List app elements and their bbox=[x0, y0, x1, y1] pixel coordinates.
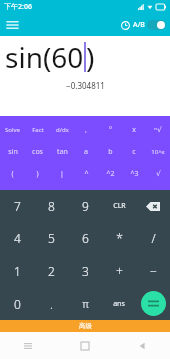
staticText: Solve bbox=[5, 126, 20, 134]
staticText: / bbox=[151, 230, 156, 246]
button[interactable]: / bbox=[136, 222, 170, 254]
button[interactable]: ) bbox=[25, 163, 50, 185]
staticText: 3 bbox=[82, 263, 89, 279]
button[interactable]: Recents bbox=[0, 332, 56, 359]
button[interactable]: 7 bbox=[0, 190, 34, 222]
staticText: − bbox=[150, 263, 157, 279]
staticText: π bbox=[82, 297, 89, 311]
button[interactable]: c bbox=[122, 141, 146, 163]
staticText: 10^x bbox=[151, 148, 165, 156]
staticText: ^3 bbox=[130, 169, 139, 179]
button[interactable]: 1 bbox=[0, 254, 34, 287]
button[interactable]: Menu bbox=[3, 16, 21, 34]
button[interactable]: + bbox=[102, 254, 136, 287]
button[interactable]: 3 bbox=[68, 254, 102, 287]
staticText: 高级 bbox=[79, 322, 92, 330]
button[interactable]: 高级 bbox=[0, 320, 170, 332]
staticText: ( bbox=[11, 169, 14, 179]
button[interactable]: 10^x bbox=[146, 141, 170, 163]
button[interactable]: ( bbox=[0, 163, 25, 185]
staticText: ) bbox=[36, 169, 39, 179]
button[interactable]: . bbox=[34, 287, 68, 320]
button[interactable]: Solve bbox=[0, 119, 25, 141]
staticText: , bbox=[85, 125, 87, 135]
staticText: ) bbox=[86, 38, 95, 76]
staticText: 6 bbox=[82, 230, 89, 246]
button[interactable]: Equals bbox=[141, 291, 166, 316]
staticText: sin bbox=[8, 147, 18, 157]
staticText: ^ bbox=[84, 169, 89, 179]
button[interactable]: History bbox=[118, 18, 132, 32]
staticText: a bbox=[84, 147, 88, 157]
button[interactable]: Toggle A or B bbox=[147, 20, 166, 30]
button[interactable]: √ bbox=[146, 163, 170, 185]
button[interactable]: b bbox=[98, 141, 122, 163]
staticText: 2 bbox=[48, 263, 55, 279]
button[interactable]: ° bbox=[98, 119, 122, 141]
staticText: ^2 bbox=[106, 169, 115, 179]
button[interactable]: 6 bbox=[68, 222, 102, 254]
button[interactable]: cos bbox=[25, 141, 50, 163]
staticText: . bbox=[50, 296, 53, 312]
staticText: 5 bbox=[48, 230, 55, 246]
staticText: c bbox=[132, 147, 136, 157]
button[interactable]: CLR bbox=[102, 190, 136, 222]
staticText: 9 bbox=[82, 198, 89, 214]
button[interactable]: | bbox=[50, 163, 74, 185]
staticText: | bbox=[60, 169, 64, 179]
button[interactable]: ^3 bbox=[122, 163, 146, 185]
staticText: cos bbox=[32, 147, 43, 157]
button[interactable]: 4 bbox=[0, 222, 34, 254]
button[interactable]: d/dx bbox=[50, 119, 74, 141]
button[interactable]: Backspace bbox=[136, 190, 170, 222]
staticText: 4 bbox=[14, 230, 21, 246]
button[interactable]: Fact bbox=[25, 119, 50, 141]
staticText: 7 bbox=[14, 198, 21, 214]
staticText: * bbox=[116, 230, 123, 246]
button[interactable]: a bbox=[74, 141, 98, 163]
staticText: x bbox=[132, 125, 136, 135]
button[interactable]: − bbox=[136, 254, 170, 287]
button[interactable]: * bbox=[102, 222, 136, 254]
staticText: + bbox=[116, 263, 123, 279]
button[interactable]: sin bbox=[0, 141, 25, 163]
button[interactable]: 2 bbox=[34, 254, 68, 287]
button[interactable]: 8 bbox=[34, 190, 68, 222]
staticText: d/dx bbox=[56, 126, 69, 134]
staticText: b bbox=[108, 147, 113, 157]
staticText: sin(60 bbox=[5, 38, 84, 76]
button[interactable]: Back bbox=[113, 332, 170, 359]
staticText: ° bbox=[109, 125, 112, 135]
staticText: A/B bbox=[133, 20, 145, 30]
button[interactable]: 5 bbox=[34, 222, 68, 254]
staticText: Fact bbox=[32, 126, 44, 134]
staticText: CLR bbox=[113, 201, 126, 211]
staticText: 8 bbox=[48, 198, 55, 214]
staticText: ans bbox=[113, 299, 125, 309]
button[interactable]: ⁿ√ bbox=[146, 119, 170, 141]
button[interactable]: 0 bbox=[0, 287, 34, 320]
staticText: 1 bbox=[14, 263, 21, 279]
staticText: 0 bbox=[14, 296, 21, 312]
button[interactable]: π bbox=[68, 287, 102, 320]
button[interactable]: Home bbox=[56, 332, 113, 359]
staticText: √ bbox=[156, 170, 161, 178]
button[interactable]: x bbox=[122, 119, 146, 141]
staticText: ⁿ√ bbox=[154, 125, 162, 135]
button[interactable]: ^2 bbox=[98, 163, 122, 185]
button[interactable]: 9 bbox=[68, 190, 102, 222]
button[interactable]: , bbox=[74, 119, 98, 141]
staticText: tan bbox=[57, 147, 68, 157]
button[interactable]: ans bbox=[102, 287, 136, 320]
button[interactable]: ^ bbox=[74, 163, 98, 185]
button[interactable]: tan bbox=[50, 141, 74, 163]
staticText: −0.304811 bbox=[66, 80, 105, 91]
staticText: 下午2:06 bbox=[4, 2, 32, 12]
